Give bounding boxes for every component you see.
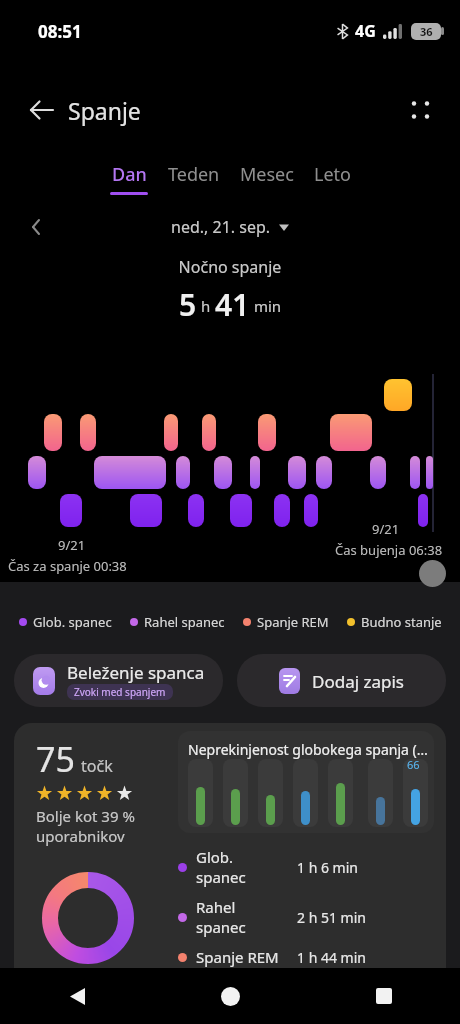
staticText: Rahel spanec <box>196 897 297 937</box>
button[interactable]: Dan <box>110 162 148 195</box>
staticText: Čas za spanje 00:38 <box>8 557 127 575</box>
staticText: 41 <box>215 284 250 320</box>
button[interactable]: ned., 21. sep. <box>171 216 289 238</box>
staticText: 08:51 <box>38 20 82 43</box>
button[interactable]: Teden <box>168 162 220 187</box>
staticText: Bolje kot 39 % <box>36 806 135 826</box>
staticText: 36 <box>420 24 433 39</box>
staticText: Glob. spanec <box>196 847 297 887</box>
staticText: Spanje <box>68 95 141 126</box>
staticText: min <box>250 296 282 316</box>
button[interactable] <box>410 100 430 120</box>
staticText: 4G <box>355 20 376 42</box>
staticText: Čas bujenja 06:38 <box>335 541 443 559</box>
button[interactable] <box>154 968 307 1024</box>
staticText: Dodaj zapis <box>312 670 405 693</box>
button[interactable]: Neprekinjenost globokega spanja (… <box>178 731 434 833</box>
staticText: 9/21 <box>58 536 86 554</box>
button[interactable]: Dodaj zapis <box>237 654 446 707</box>
staticText: Zvoki med spanjem <box>74 685 166 699</box>
staticText: točk <box>81 755 113 777</box>
staticText: Rahel spanec <box>144 613 225 631</box>
staticText: Beleženje spanca <box>67 661 205 684</box>
staticText: 2 h 51 min <box>297 908 366 927</box>
button[interactable]: Beleženje spanca <box>14 654 223 707</box>
staticText: 75 <box>36 736 75 782</box>
staticText: h <box>197 296 215 316</box>
button[interactable] <box>30 98 54 122</box>
staticText: Dan <box>112 162 147 187</box>
staticText: Nočno spanje <box>0 256 460 278</box>
staticText: ned., 21. sep. <box>171 216 271 238</box>
button[interactable] <box>0 968 154 1024</box>
staticText: Glob. spanec <box>33 613 112 631</box>
staticText: 9/21 <box>372 520 400 538</box>
button[interactable] <box>307 968 460 1024</box>
button[interactable]: Mesec <box>240 162 294 187</box>
staticText: 5 <box>179 284 197 320</box>
button[interactable]: Leto <box>314 162 351 187</box>
staticText: Spanje REM <box>257 613 329 631</box>
staticText: Spanje REM <box>196 947 297 967</box>
staticText: Budno stanje <box>361 613 442 631</box>
staticText: 1 h 44 min <box>297 948 366 967</box>
staticText: Neprekinjenost globokega spanja (… <box>188 740 428 759</box>
staticText: 66 <box>407 757 420 772</box>
button[interactable]: 75 <box>14 723 446 968</box>
staticText: 1 h 6 min <box>297 858 358 877</box>
staticText: uporabnikov <box>36 826 125 846</box>
